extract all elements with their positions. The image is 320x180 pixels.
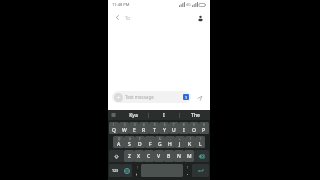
staticText: D <box>138 141 142 148</box>
button[interactable]: Change language <box>122 164 132 177</box>
staticText: ) <box>200 137 201 141</box>
button[interactable]: 9 <box>189 122 199 134</box>
button[interactable]: 123 <box>109 164 122 177</box>
button[interactable]: V <box>154 150 164 162</box>
button[interactable]: # <box>124 136 135 148</box>
staticText: Z <box>128 153 131 160</box>
staticText: S <box>128 141 131 148</box>
staticText: 5 <box>154 123 156 127</box>
staticText: 9 <box>193 123 195 127</box>
button[interactable]: + <box>175 136 185 148</box>
button[interactable]: & <box>155 136 165 148</box>
staticText: 1 <box>113 123 115 127</box>
staticText: C <box>147 153 151 160</box>
button[interactable]: ? <box>183 164 192 177</box>
staticText: W <box>122 127 127 134</box>
button[interactable]: Back <box>111 11 124 24</box>
staticText: 3 <box>134 123 136 127</box>
staticText: Q <box>112 127 116 134</box>
staticText: . <box>187 170 189 176</box>
staticText: 11:48 PM <box>112 2 130 7</box>
staticText: F <box>149 141 152 148</box>
button[interactable]: Attach <box>114 93 123 102</box>
staticText: _ <box>150 137 152 141</box>
staticText: X <box>137 153 141 160</box>
button[interactable]: M <box>184 150 194 162</box>
button[interactable]: 7 <box>169 122 179 134</box>
staticText: Kya <box>129 112 138 119</box>
staticText: 2 <box>124 123 126 127</box>
button[interactable]: _ <box>145 136 155 148</box>
staticText: B <box>167 153 171 160</box>
staticText: ( <box>190 137 191 141</box>
button[interactable]: 0 <box>199 122 209 134</box>
button[interactable]: - <box>165 136 175 148</box>
button[interactable]: SIM <box>183 94 189 100</box>
button[interactable]: Backspace <box>194 150 209 162</box>
staticText: 0 <box>203 123 205 127</box>
staticText: ? <box>187 166 189 170</box>
staticText: A <box>117 141 121 148</box>
staticText: 8 <box>183 123 185 127</box>
staticText: Y <box>163 127 166 134</box>
button[interactable]: $ <box>135 136 145 148</box>
button[interactable]: X <box>134 150 144 162</box>
staticText: 7 <box>173 123 175 127</box>
staticText: To <box>125 15 130 21</box>
staticText: T <box>153 127 156 134</box>
staticText: I <box>163 112 165 119</box>
button[interactable]: Add contact <box>193 11 207 25</box>
staticText: 4 <box>143 123 145 127</box>
staticText: & <box>159 137 161 141</box>
staticText: , <box>136 170 138 176</box>
button[interactable]: Enter <box>192 164 209 177</box>
staticText: G <box>158 141 162 148</box>
button[interactable]: C <box>144 150 154 162</box>
staticText: - <box>170 137 171 141</box>
staticText: V <box>157 153 161 160</box>
button[interactable]: Shift <box>109 150 124 162</box>
button[interactable]: 5 <box>149 122 159 134</box>
button[interactable]: 2 <box>119 122 129 134</box>
staticText: Text message <box>125 94 183 100</box>
staticText: J <box>179 141 181 148</box>
staticText: 123 <box>112 168 119 173</box>
button[interactable]: ) <box>195 136 205 148</box>
button[interactable]: I <box>149 110 179 120</box>
button[interactable]: B <box>164 150 174 162</box>
staticText: H <box>168 141 172 148</box>
staticText: L <box>199 141 202 148</box>
button[interactable]: ( <box>185 136 195 148</box>
button[interactable]: Z <box>124 150 134 162</box>
button[interactable]: The <box>180 110 210 120</box>
button[interactable]: N <box>174 150 184 162</box>
staticText: # <box>129 137 131 141</box>
staticText: 4G <box>186 2 191 7</box>
staticText: I <box>183 127 185 134</box>
button[interactable]: 6 <box>159 122 169 134</box>
button[interactable]: Keyboard options <box>108 110 119 120</box>
button[interactable]: Send <box>194 92 205 103</box>
staticText: P <box>202 127 206 134</box>
staticText: R <box>142 127 146 134</box>
staticText: N <box>177 153 181 160</box>
button[interactable]: @ <box>113 136 124 148</box>
staticText: The <box>191 112 200 119</box>
staticText: @ <box>118 137 121 141</box>
staticText: O <box>192 127 196 134</box>
staticText: ! <box>137 166 138 170</box>
button[interactable]: 8 <box>179 122 189 134</box>
button[interactable]: Attach <box>112 91 191 103</box>
staticText: M <box>187 153 192 160</box>
staticText: + <box>179 137 181 141</box>
button[interactable]: Kya <box>119 110 148 120</box>
staticText: K <box>188 141 192 148</box>
button[interactable]: 4 <box>139 122 149 134</box>
staticText: E <box>133 127 136 134</box>
button[interactable]: ! <box>132 164 141 177</box>
button[interactable]: 1 <box>109 122 119 134</box>
staticText: 1 <box>185 95 188 100</box>
button[interactable]: 3 <box>129 122 139 134</box>
staticText: U <box>172 127 176 134</box>
